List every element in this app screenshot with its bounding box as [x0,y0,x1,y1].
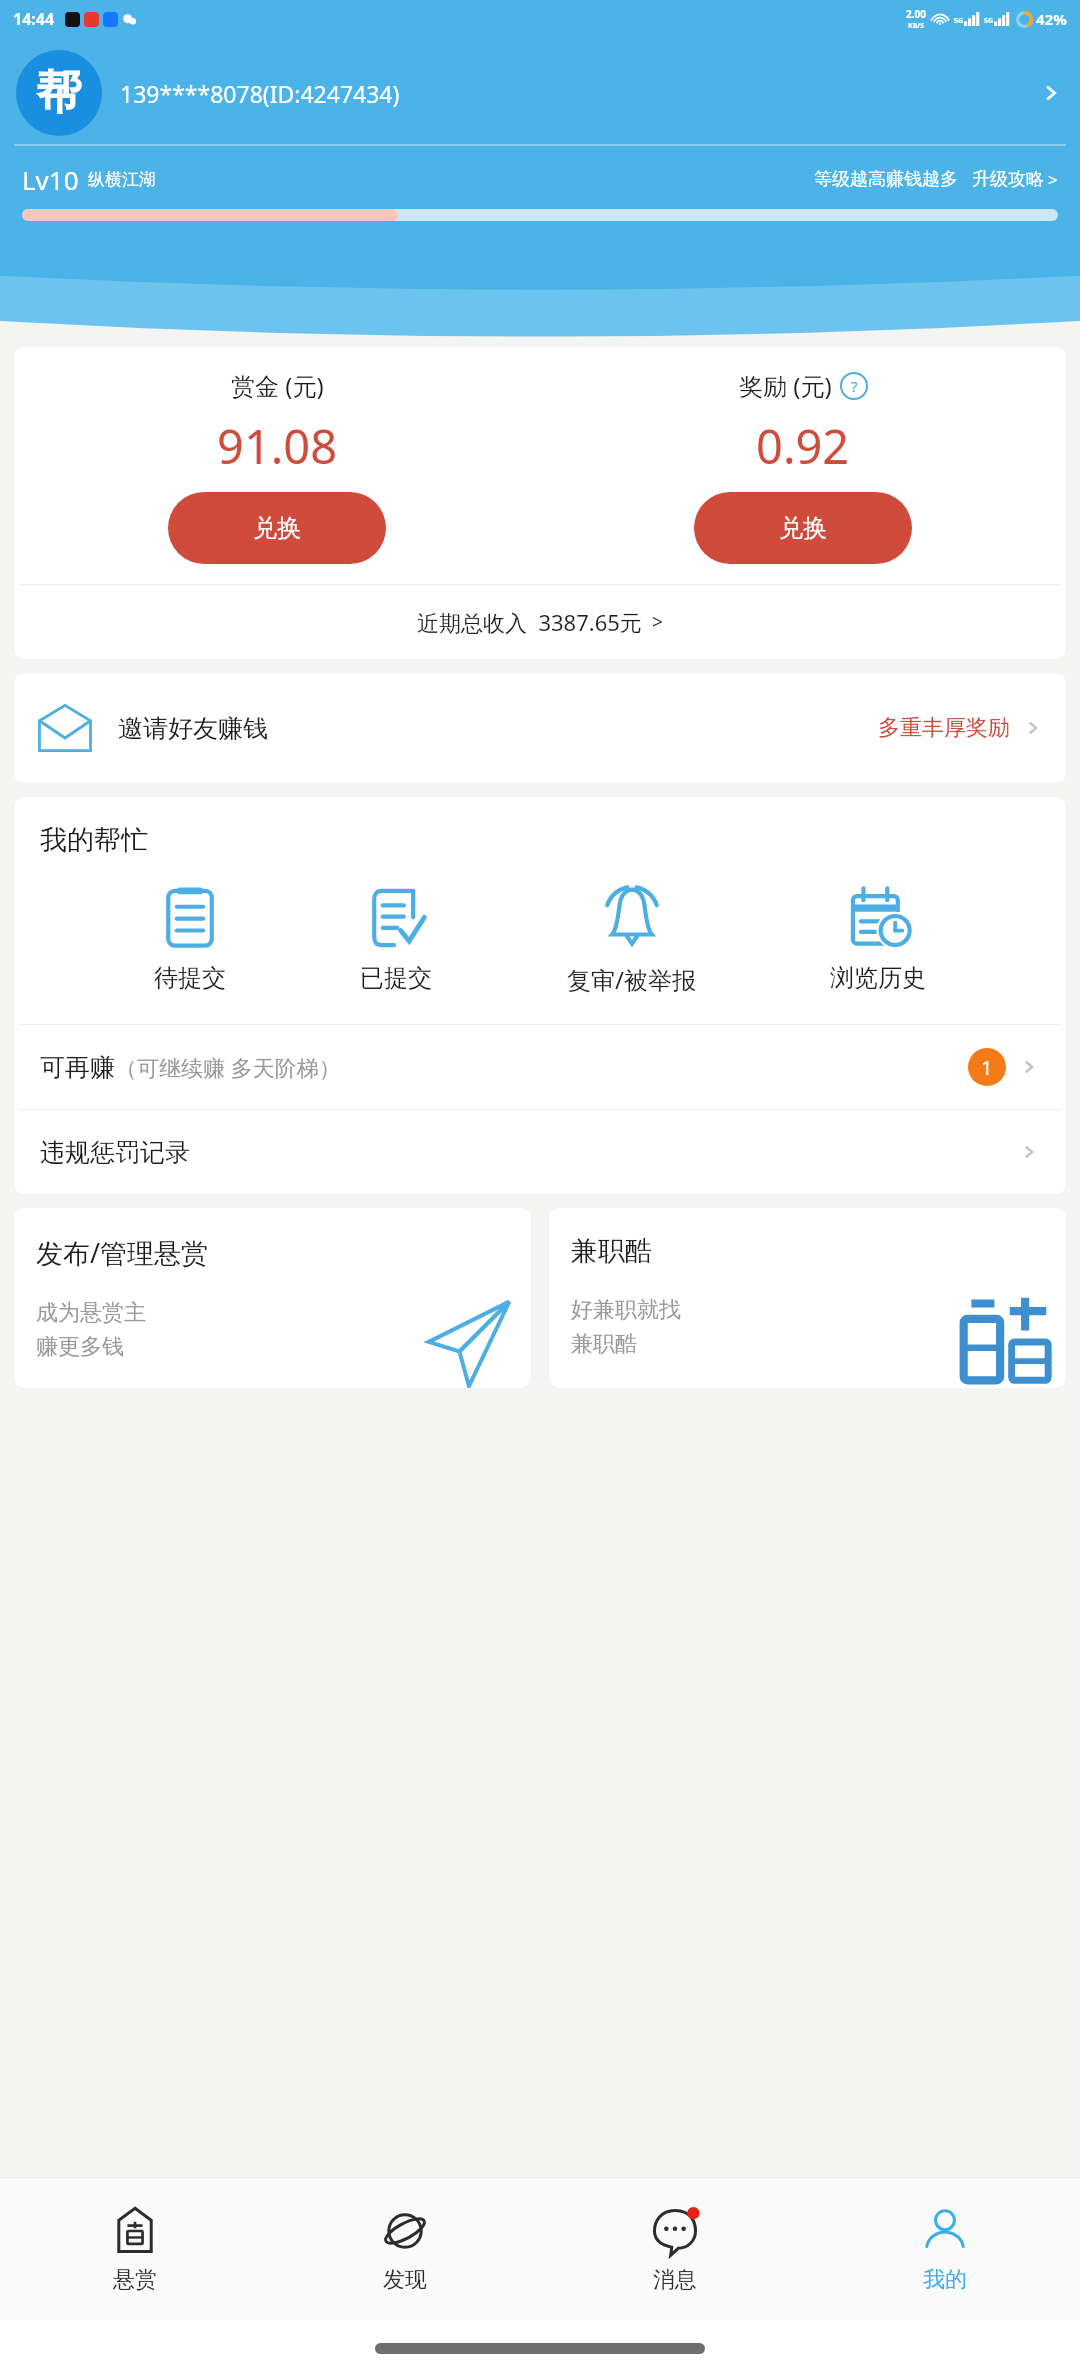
staticText: 发现 [383,2266,427,2294]
button[interactable]: Help [840,372,868,400]
button[interactable]: 兼职酷 [549,1208,1066,1388]
staticText: 兼职酷 [571,1330,637,1358]
staticText: 兑换 [253,513,301,543]
button[interactable]: 复审/被举报 [563,883,700,996]
staticText: 升级攻略 [972,168,1044,191]
button[interactable]: 可再赚 [14,1025,1066,1109]
staticText: 复审/被举报 [567,963,696,996]
button[interactable]: 近期总收入 3387.65元 [14,585,1066,659]
staticText: 纵横江湖 [88,169,156,190]
staticText: 赏金 (元) [231,369,324,402]
staticText: 可再赚 [40,1052,115,1083]
staticText: 我的 [923,2266,967,2294]
staticText: 成为悬赏主 [36,1299,146,1327]
staticText: ? [851,376,858,396]
staticText: > [1048,168,1058,191]
staticText: KB/S [908,21,925,31]
button[interactable]: 悬赏 [0,2178,270,2320]
staticText: 违规惩罚记录 [40,1137,190,1168]
staticText: > [652,609,663,635]
other: Profile detail [1038,80,1064,106]
button[interactable]: 我的 [810,2178,1080,2320]
staticText: 14:44 [13,8,55,30]
button[interactable]: 兑换 [168,492,386,564]
staticText: 2.00 [906,7,926,21]
button[interactable]: 邀请好友赚钱 [14,673,1066,783]
staticText: 悬赏 [113,2266,157,2294]
staticText: 近期总收入 3387.65元 [417,607,642,637]
button[interactable]: 兑换 [694,492,912,564]
staticText: 消息 [653,2266,697,2294]
button[interactable]: 已提交 [356,883,436,993]
staticText: 0.92 [756,414,850,478]
staticText: 等级越高赚钱越多 [814,168,958,191]
staticText: 91.08 [217,414,338,478]
staticText: 好兼职就找 [571,1296,681,1324]
staticText: 5G [984,16,994,26]
staticText: 帮 [36,64,82,122]
button[interactable]: 升级攻略 [972,168,1058,191]
staticText: 邀请好友赚钱 [118,713,268,744]
button[interactable]: 违规惩罚记录 [14,1110,1066,1194]
staticText: 139****8078(ID:4247434) [120,78,400,109]
staticText: 兼职酷 [571,1234,652,1268]
staticText: 兑换 [779,513,827,543]
staticText: 多重丰厚奖励 [878,714,1010,742]
button[interactable]: 待提交 [150,883,230,993]
staticText: 我的帮忙 [40,823,148,857]
staticText: 赚更多钱 [36,1333,124,1361]
staticText: 5G [954,16,964,26]
staticText: 待提交 [154,963,226,993]
button[interactable]: 浏览历史 [826,883,930,993]
staticText: Lv10 [22,162,79,197]
button[interactable]: 消息 [540,2178,810,2320]
staticText: 42% [1036,9,1067,29]
button[interactable]: 帮 [0,50,1080,136]
staticText: （可继续赚 多天阶梯） [115,1052,341,1082]
staticText: 奖励 (元) [739,369,832,402]
button[interactable]: 发布/管理悬赏 [14,1208,531,1388]
staticText: 发布/管理悬赏 [36,1234,209,1271]
staticText: 1 [981,1054,993,1081]
staticText: 浏览历史 [830,963,926,993]
button[interactable]: 发现 [270,2178,540,2320]
staticText: 已提交 [360,963,432,993]
